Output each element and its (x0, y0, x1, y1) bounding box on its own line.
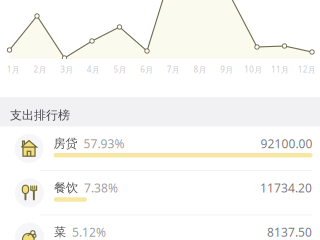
staticText: 92100.00 (260, 135, 312, 151)
staticText: 11734.20 (260, 180, 312, 196)
button[interactable]: 房贷 (0, 127, 320, 170)
staticText: 57.93% (83, 135, 124, 151)
staticText: 8月 (193, 64, 206, 75)
staticText: 4月 (87, 64, 100, 75)
staticText: 8137.50 (267, 224, 312, 240)
staticText: 1月 (7, 64, 20, 75)
staticText: 房贷 (53, 136, 77, 151)
staticText: 11月 (271, 64, 289, 75)
staticText: 12月 (298, 64, 316, 75)
staticText: 9月 (220, 64, 233, 75)
staticText: 3月 (60, 64, 73, 75)
staticText: 支出排行榜 (10, 108, 70, 123)
button[interactable]: 餐饮 (0, 171, 320, 214)
staticText: 7.38% (84, 180, 118, 196)
staticText: 5月 (113, 64, 126, 75)
staticText: 2月 (33, 64, 46, 75)
staticText: 7月 (167, 64, 180, 75)
staticText: 6月 (140, 64, 153, 75)
staticText: 菜 (54, 225, 66, 239)
staticText: 10月 (244, 64, 262, 75)
button[interactable]: 菜 (0, 215, 320, 240)
staticText: 餐饮 (54, 180, 78, 195)
staticText: 5.12% (72, 224, 106, 240)
